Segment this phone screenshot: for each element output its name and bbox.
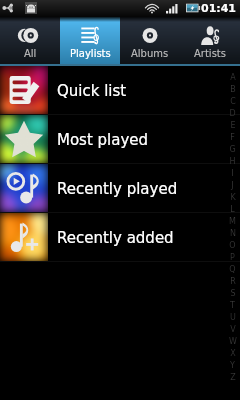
staticText: R: [230, 277, 236, 286]
staticText: I: [231, 169, 234, 178]
staticText: Albums: [131, 48, 169, 60]
staticText: Quick list: [57, 82, 127, 99]
staticText: Recently played: [57, 180, 178, 197]
staticText: B: [230, 85, 236, 94]
staticText: N: [230, 229, 236, 238]
staticText: P: [230, 253, 235, 262]
staticText: 01:41: [201, 2, 237, 15]
staticText: U: [230, 313, 236, 322]
staticText: All: [24, 48, 37, 60]
staticText: Playlists: [70, 48, 111, 60]
staticText: V: [230, 325, 236, 334]
staticText: J: [231, 181, 234, 190]
staticText: O: [229, 241, 236, 250]
staticText: K: [230, 193, 236, 202]
staticText: L: [230, 205, 235, 214]
staticText: F: [230, 133, 235, 142]
staticText: Artists: [194, 48, 226, 60]
staticText: Recently added: [57, 229, 174, 246]
button[interactable]: Playlists: [60, 17, 120, 66]
button[interactable]: All: [0, 17, 60, 66]
button[interactable]: Albums: [120, 17, 180, 66]
staticText: D: [229, 109, 236, 118]
staticText: H: [229, 157, 236, 166]
button[interactable]: Quick list: [0, 66, 240, 114]
staticText: Q: [229, 265, 236, 274]
button[interactable]: Recently added: [0, 213, 240, 261]
staticText: E: [230, 121, 236, 130]
staticText: M: [229, 217, 236, 226]
staticText: A: [230, 73, 236, 82]
staticText: W: [229, 337, 237, 346]
staticText: C: [230, 97, 236, 106]
button[interactable]: Artists: [180, 17, 240, 66]
staticText: Most played: [57, 131, 149, 148]
button[interactable]: Most played: [0, 115, 240, 163]
staticText: Y: [230, 361, 235, 370]
staticText: X: [230, 349, 236, 358]
button[interactable]: Recently played: [0, 164, 240, 212]
staticText: G: [229, 145, 236, 154]
staticText: T: [230, 301, 235, 310]
staticText: Z: [230, 373, 236, 382]
staticText: S: [230, 289, 236, 298]
